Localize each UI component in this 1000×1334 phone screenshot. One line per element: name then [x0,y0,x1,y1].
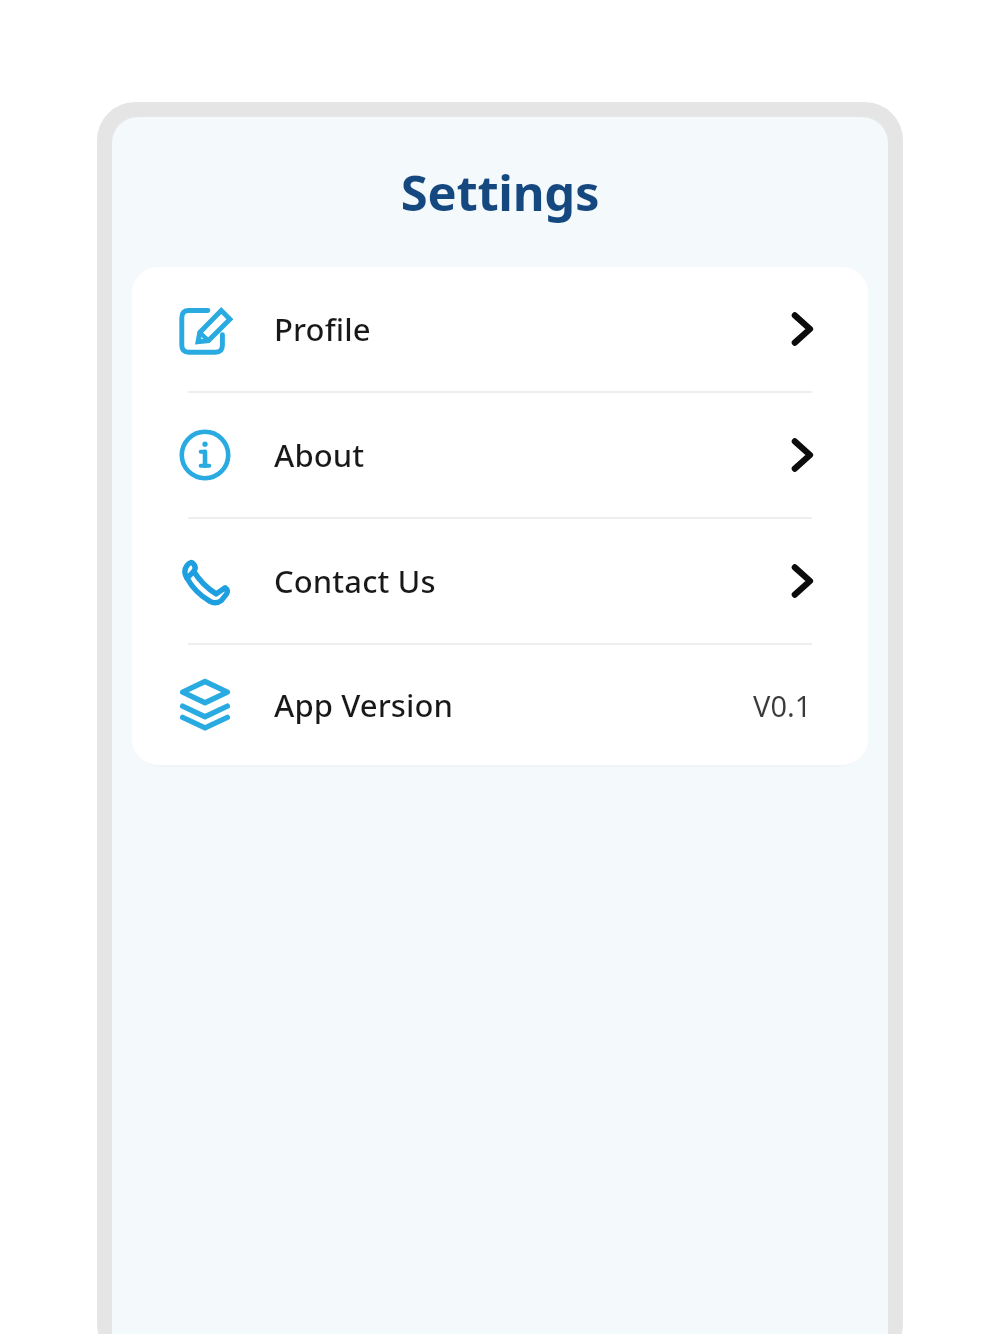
other: Open About [780,433,824,477]
button[interactable]: App Version [132,645,868,765]
staticText: App Version [274,684,454,726]
staticText: Settings [112,159,888,226]
staticText: Profile [274,308,371,350]
staticText: V0.1 [753,686,812,725]
staticText: About [274,434,365,476]
button[interactable]: About [132,393,868,517]
other: Open Contact Us [780,559,824,603]
button[interactable]: Profile [132,267,868,391]
other: Open Profile [780,307,824,351]
button[interactable]: Contact Us [132,519,868,643]
staticText: Contact Us [274,560,436,602]
